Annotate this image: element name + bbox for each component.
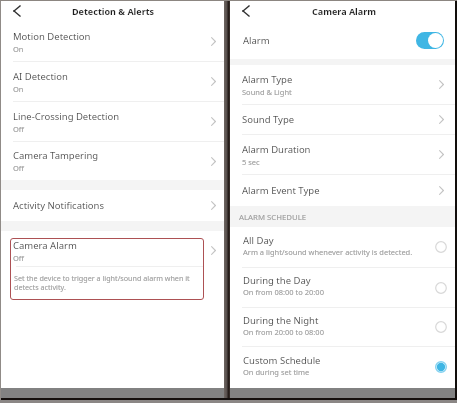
button[interactable]: Alarm Type	[230, 65, 455, 104]
staticText: Alarm Type	[242, 73, 293, 86]
staticText: Custom Schedule	[243, 354, 321, 367]
staticText: Activity Notifications	[13, 199, 105, 212]
staticText: Off	[13, 253, 25, 263]
button[interactable]: Line-Crossing Detection	[1, 102, 224, 141]
staticText: Alarm Event Type	[242, 184, 320, 197]
staticText: Camera Tampering	[13, 149, 99, 162]
button[interactable]: Back	[6, 0, 28, 21]
button[interactable]: Alarm Event Type	[230, 175, 455, 206]
button[interactable]: Custom Schedule	[230, 347, 455, 387]
staticText: Alarm	[243, 34, 416, 47]
button[interactable]: Sound Type	[230, 105, 455, 134]
button[interactable]: Motion Detection	[1, 22, 224, 61]
staticText: During the Day	[243, 274, 311, 287]
staticText: Set the device to trigger a light/sound …	[14, 273, 190, 292]
staticText: On	[13, 44, 24, 54]
staticText: ALARM SCHEDULE	[239, 212, 307, 223]
button[interactable]	[1, 239, 224, 269]
staticText: Alarm Duration	[242, 143, 311, 156]
staticText: All Day	[243, 234, 274, 247]
button[interactable]: Back	[235, 0, 257, 21]
staticText: On	[13, 84, 24, 94]
button[interactable]: All Day	[230, 227, 455, 267]
staticText: Camera Alarm	[312, 5, 376, 17]
button[interactable]: During the Day	[230, 268, 455, 307]
button[interactable]: Camera Tampering	[1, 142, 224, 180]
staticText: On from 08:00 to 20:00	[243, 287, 324, 297]
staticText: On during set time	[243, 367, 310, 377]
staticText: Off	[13, 163, 25, 173]
button[interactable]: Activity Notifications	[1, 190, 224, 221]
button[interactable]: Alarm	[230, 22, 455, 59]
staticText: Sound Type	[242, 113, 295, 126]
staticText: Sound & Light	[242, 87, 292, 97]
button[interactable]: AI Detection	[1, 62, 224, 101]
staticText: 5 sec	[242, 157, 260, 167]
staticText: Arm a light/sound whenever activity is d…	[243, 247, 413, 257]
staticText: During the Night	[243, 314, 319, 327]
staticText: Line-Crossing Detection	[13, 110, 120, 123]
button[interactable]: During the Night	[230, 308, 455, 346]
staticText: Motion Detection	[13, 30, 91, 43]
staticText: Off	[13, 124, 25, 134]
staticText: AI Detection	[13, 70, 68, 83]
button[interactable]: Alarm Duration	[230, 135, 455, 174]
staticText: Camera Alarm	[13, 239, 77, 252]
staticText: Detection & Alerts	[72, 5, 155, 17]
staticText: On from 20:00 to 08:00	[243, 327, 324, 337]
